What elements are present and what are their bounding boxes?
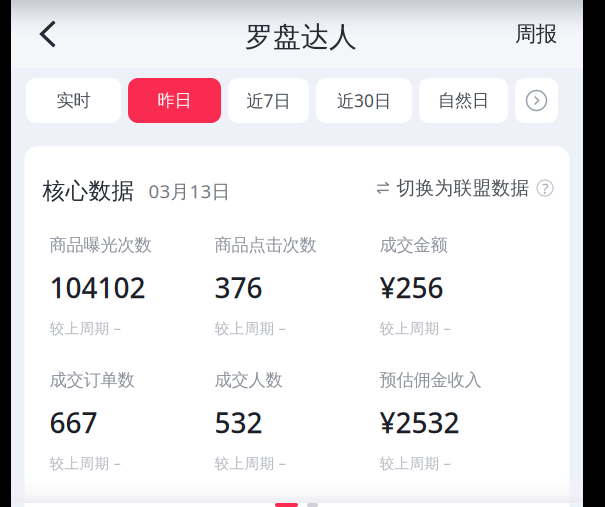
staticText: 667 [49, 404, 97, 441]
staticText: ¥256 [379, 269, 443, 306]
button[interactable]: 昨日 [128, 78, 221, 123]
staticText: 成交人数 [214, 369, 282, 391]
button[interactable]: 近30日 [316, 78, 412, 123]
staticText: 较上周期 – [49, 453, 120, 473]
staticText: 切换为联盟数据 [396, 176, 529, 199]
staticText: 376 [214, 269, 262, 306]
staticText: 实时 [56, 90, 90, 111]
button[interactable]: 实时 [26, 78, 121, 123]
button[interactable]: 周报 [485, 0, 557, 68]
staticText: 核心数据 [42, 177, 134, 205]
staticText: 较上周期 – [214, 318, 285, 338]
staticText: 周报 [515, 21, 557, 47]
staticText: 较上周期 – [214, 453, 285, 473]
staticText: 昨日 [157, 90, 191, 111]
staticText: 预估佣金收入 [379, 369, 481, 391]
staticText: 自然日 [438, 90, 489, 111]
staticText: ? [542, 178, 548, 198]
staticText: 商品点击次数 [214, 234, 316, 256]
staticText: 03月13日 [148, 179, 230, 203]
staticText: 较上周期 – [49, 318, 120, 338]
staticText: ¥2532 [379, 404, 459, 441]
staticText: 104102 [49, 269, 145, 306]
staticText: 近30日 [337, 89, 391, 112]
staticText: 近7日 [246, 89, 290, 112]
staticText: 罗盘达人 [245, 20, 357, 54]
button[interactable]: 切换为联盟数据 [376, 166, 553, 216]
button[interactable]: 自然日 [419, 78, 508, 123]
staticText: 成交订单数 [49, 369, 134, 391]
staticText: 较上周期 – [379, 453, 450, 473]
button[interactable]: More date ranges [515, 78, 558, 123]
staticText: 商品曝光次数 [49, 234, 151, 256]
button[interactable]: 近7日 [228, 78, 309, 123]
staticText: 成交金额 [379, 234, 447, 256]
staticText: 较上周期 – [379, 318, 450, 338]
staticText: 532 [214, 404, 262, 441]
button[interactable]: Back [39, 0, 91, 68]
